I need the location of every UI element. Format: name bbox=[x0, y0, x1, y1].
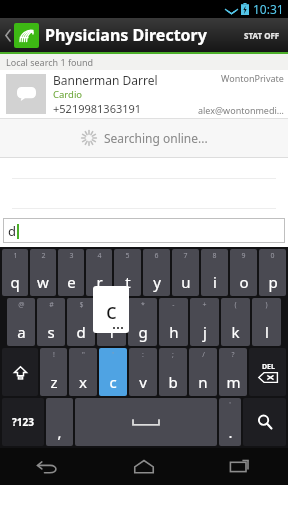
button[interactable]: 8 bbox=[201, 249, 228, 296]
button[interactable]: ' bbox=[219, 398, 241, 446]
staticText: r bbox=[96, 272, 103, 292]
button[interactable]: d bbox=[4, 219, 284, 242]
staticText: i bbox=[213, 272, 217, 292]
staticText: d bbox=[8, 222, 16, 240]
button[interactable]: Back bbox=[2, 20, 14, 50]
staticText: 5 bbox=[125, 251, 130, 261]
staticText: 8 bbox=[212, 251, 217, 261]
staticText: DEL bbox=[262, 362, 275, 372]
button[interactable]: ! bbox=[40, 348, 67, 396]
staticText: t bbox=[125, 272, 131, 292]
button[interactable]: " bbox=[69, 348, 97, 396]
staticText: % bbox=[109, 300, 115, 310]
staticText: ' bbox=[229, 400, 231, 410]
button[interactable]: Delete bbox=[249, 348, 286, 396]
button[interactable]: Shift bbox=[2, 348, 38, 396]
staticText: " bbox=[82, 350, 85, 360]
button[interactable]: Searching online... bbox=[0, 119, 288, 157]
staticText: ? bbox=[231, 350, 235, 360]
button[interactable]: App icon bbox=[14, 23, 39, 48]
button[interactable]: 2 bbox=[30, 249, 56, 296]
button[interactable]: # bbox=[37, 298, 65, 346]
staticText: w bbox=[37, 272, 49, 292]
staticText: Cardio bbox=[53, 88, 83, 101]
button[interactable]: Recent apps bbox=[192, 448, 288, 485]
button[interactable]: ?123 bbox=[2, 398, 44, 446]
staticText: , bbox=[57, 422, 62, 442]
button[interactable]: / bbox=[189, 348, 217, 396]
staticText: WontonPrivate bbox=[221, 72, 284, 84]
button[interactable]: + bbox=[190, 298, 219, 346]
staticText: m bbox=[226, 372, 241, 392]
staticText: n bbox=[198, 372, 208, 392]
button[interactable]: Back bbox=[0, 448, 96, 485]
button[interactable]: : bbox=[129, 348, 157, 396]
staticText: @ bbox=[18, 300, 25, 310]
button[interactable]: ; bbox=[159, 348, 187, 396]
staticText: k bbox=[231, 322, 240, 342]
button[interactable]: ? bbox=[219, 348, 247, 396]
staticText: a bbox=[17, 322, 26, 342]
button[interactable]: @ bbox=[7, 298, 35, 346]
staticText: Searching online... bbox=[104, 130, 208, 146]
button[interactable]: Home bbox=[96, 448, 192, 485]
staticText: l bbox=[265, 322, 269, 342]
staticText: u bbox=[181, 272, 191, 292]
button[interactable]: 1 bbox=[2, 249, 28, 296]
staticText: o bbox=[239, 272, 249, 292]
staticText: ' bbox=[112, 350, 114, 360]
button[interactable]: - bbox=[159, 298, 188, 346]
staticText: ! bbox=[53, 350, 55, 360]
button[interactable]: 4 bbox=[86, 249, 112, 296]
staticText: e bbox=[67, 272, 76, 292]
button[interactable]: Search bbox=[243, 398, 286, 446]
button[interactable]: ' bbox=[99, 348, 127, 396]
staticText: 3 bbox=[69, 251, 74, 261]
button[interactable]: 5 bbox=[114, 249, 141, 296]
staticText: f bbox=[109, 322, 115, 342]
staticText: q bbox=[10, 272, 20, 292]
staticText: 7 bbox=[183, 251, 188, 261]
staticText: 9 bbox=[241, 251, 246, 261]
staticText: # bbox=[49, 300, 54, 310]
staticText: c bbox=[109, 372, 117, 392]
staticText: p bbox=[268, 272, 278, 292]
staticText: z bbox=[50, 372, 58, 392]
button[interactable]: , bbox=[46, 398, 73, 446]
staticText: + bbox=[202, 300, 207, 310]
staticText: y bbox=[153, 272, 161, 292]
staticText: 1 bbox=[13, 251, 18, 261]
button[interactable]: Space bbox=[75, 398, 217, 446]
staticText: * bbox=[141, 300, 145, 310]
staticText: 4 bbox=[97, 251, 102, 261]
button[interactable]: STAT OFF bbox=[241, 24, 283, 47]
staticText: ; bbox=[172, 350, 174, 360]
staticText: STAT OFF bbox=[244, 30, 280, 41]
staticText: ( bbox=[234, 300, 237, 310]
staticText: x bbox=[79, 372, 87, 392]
button[interactable]: 0 bbox=[259, 249, 286, 296]
staticText: j bbox=[203, 322, 207, 342]
button[interactable]: 6 bbox=[143, 249, 170, 296]
button[interactable]: 9 bbox=[230, 249, 257, 296]
staticText: Bannerman Darrel bbox=[53, 72, 158, 88]
staticText: Physicians Directory bbox=[45, 24, 207, 46]
staticText: +5219981363191 bbox=[53, 101, 142, 116]
staticText: : bbox=[142, 350, 144, 360]
button[interactable]: ( bbox=[221, 298, 250, 346]
button[interactable]: 3 bbox=[58, 249, 84, 296]
staticText: - bbox=[172, 300, 175, 310]
button[interactable]: $ bbox=[67, 298, 95, 346]
staticText: d bbox=[76, 322, 86, 342]
staticText: g bbox=[138, 322, 148, 342]
staticText: $ bbox=[79, 300, 84, 310]
button[interactable]: 7 bbox=[172, 249, 199, 296]
button[interactable]: Bannerman Darrel bbox=[0, 70, 288, 118]
button[interactable]: % bbox=[97, 298, 126, 346]
staticText: . bbox=[228, 422, 233, 442]
staticText: v bbox=[139, 372, 147, 392]
button[interactable]: ) bbox=[252, 298, 281, 346]
button[interactable]: * bbox=[128, 298, 157, 346]
staticText: / bbox=[202, 350, 205, 360]
staticText: 10:31 bbox=[253, 1, 284, 17]
